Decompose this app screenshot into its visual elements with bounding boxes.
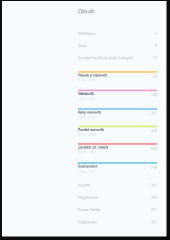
staticText: Seznam myšlenek podle kategorií — [78, 56, 133, 60]
button[interactable]: Středověk — [78, 88, 157, 107]
staticText: 500 – 1400 — [78, 97, 95, 101]
button[interactable]: Současnost — [78, 161, 157, 179]
staticText: Současnost — [78, 164, 97, 168]
button[interactable]: Poděkování — [78, 220, 157, 232]
staticText: 148 — [151, 93, 157, 97]
button[interactable]: Přispěvatelé — [78, 195, 157, 208]
staticText: 606 — [151, 147, 157, 151]
staticText: 352 — [151, 220, 157, 224]
staticText: 1945 – dnes — [78, 170, 96, 173]
staticText: Úvod — [78, 44, 86, 48]
staticText: 1900 – 1945 — [78, 151, 97, 154]
staticText: Raný novověk — [78, 110, 101, 114]
staticText: 1750 – 1900 — [78, 133, 97, 137]
button[interactable]: Pozdní novověk — [78, 124, 157, 142]
staticText: 3 mil. – 500 — [78, 79, 96, 82]
button[interactable]: Rejstřík — [78, 183, 157, 195]
staticText: 351 — [151, 208, 157, 212]
button[interactable]: Začátek 20. století — [78, 142, 157, 161]
staticText: 342 — [151, 183, 157, 187]
button[interactable]: Úvod — [78, 44, 157, 56]
button[interactable]: Předmluva — [78, 31, 157, 44]
staticText: 12 — [153, 56, 157, 60]
staticText: 798 — [151, 166, 157, 170]
staticText: Pravěk a starověk — [78, 73, 107, 77]
button[interactable]: Pravěk a starověk — [78, 70, 157, 88]
staticText: Předmluva — [78, 31, 95, 36]
staticText: 8 — [155, 44, 157, 48]
staticText: Rejstřík — [78, 183, 90, 187]
staticText: 428 — [151, 129, 157, 133]
staticText: 350 — [151, 196, 157, 200]
staticText: Pozdní novověk — [78, 127, 104, 132]
staticText: Obsah — [78, 7, 94, 15]
staticText: 20 — [153, 75, 157, 79]
staticText: Začátek 20. století — [78, 145, 108, 149]
staticText: Poděkování — [78, 220, 97, 224]
staticText: Picture Credits — [78, 208, 101, 212]
staticText: Přispěvatelé — [78, 195, 98, 200]
staticText: 6 — [155, 31, 157, 35]
button[interactable]: Raný novověk — [78, 107, 157, 124]
staticText: 1400 – 1750 — [78, 116, 97, 119]
staticText: Středověk — [78, 91, 94, 96]
staticText: 312 — [151, 112, 157, 116]
button[interactable]: Picture Credits — [78, 208, 157, 220]
button[interactable]: Seznam myšlenek podle kategorií — [78, 56, 157, 68]
